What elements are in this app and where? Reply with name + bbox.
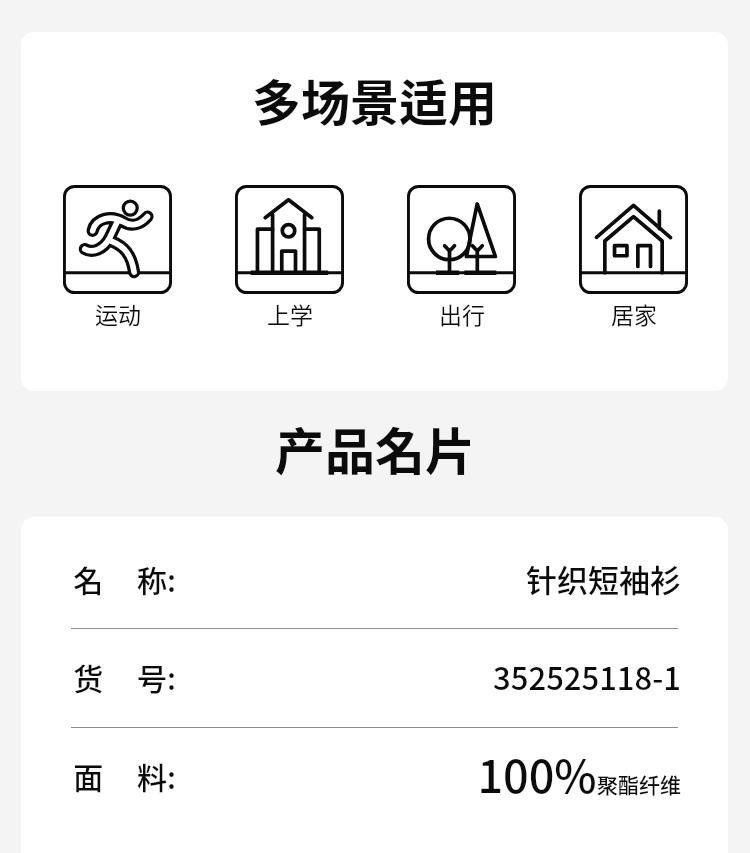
staticText: 上学 bbox=[267, 297, 313, 330]
staticText: 运动 bbox=[95, 297, 141, 330]
staticText: 居家 bbox=[611, 297, 657, 330]
staticText: 针织短袖衫 bbox=[526, 556, 681, 601]
staticText: 产品名片 bbox=[0, 412, 750, 484]
staticText: 聚酯纤维 bbox=[597, 769, 681, 799]
button[interactable]: 居家 bbox=[579, 185, 688, 330]
button[interactable]: 出行 bbox=[407, 185, 516, 330]
staticText: 多场景适用 bbox=[21, 64, 728, 135]
staticText: 货 号: bbox=[73, 655, 176, 698]
staticText: 100% bbox=[477, 741, 597, 806]
staticText: 面 料: bbox=[73, 754, 176, 797]
staticText: 出行 bbox=[439, 297, 485, 330]
button[interactable]: 上学 bbox=[235, 185, 344, 330]
staticText: 名 称: bbox=[73, 557, 176, 600]
button[interactable]: 面 料: bbox=[21, 728, 728, 829]
button[interactable]: 运动 bbox=[63, 185, 172, 330]
button[interactable]: 名 称: bbox=[21, 530, 728, 628]
staticText: 352525118-1 bbox=[493, 654, 681, 699]
button[interactable]: 货 号: bbox=[21, 629, 728, 727]
